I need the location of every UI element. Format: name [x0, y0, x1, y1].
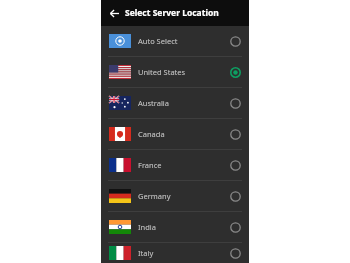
staticText: Australia [138, 98, 230, 108]
button[interactable]: Germany [101, 181, 249, 211]
button[interactable]: Australia [101, 88, 249, 118]
button[interactable]: Italy [101, 243, 249, 263]
staticText: France [138, 160, 230, 170]
button[interactable]: Back [106, 5, 122, 21]
button[interactable]: Auto Select [101, 26, 249, 56]
staticText: Germany [138, 191, 230, 201]
staticText: United States [138, 67, 230, 77]
button[interactable]: United States [101, 57, 249, 87]
staticText: India [138, 222, 230, 232]
button[interactable]: Canada [101, 119, 249, 149]
staticText: Select Server Location [125, 7, 219, 19]
staticText: Italy [138, 248, 230, 258]
button[interactable]: France [101, 150, 249, 180]
staticText: Auto Select [138, 36, 230, 46]
button[interactable]: India [101, 212, 249, 242]
staticText: Canada [138, 129, 230, 139]
